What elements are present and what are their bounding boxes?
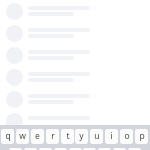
button[interactable] bbox=[0, 89, 150, 111]
button[interactable]: r bbox=[46, 129, 59, 144]
button[interactable]: e bbox=[31, 129, 44, 144]
staticText: i bbox=[110, 130, 113, 142]
button[interactable]: j bbox=[98, 148, 111, 150]
staticText: u bbox=[94, 130, 100, 142]
button[interactable]: t bbox=[61, 129, 74, 144]
button[interactable] bbox=[0, 1, 150, 23]
button[interactable] bbox=[0, 111, 150, 133]
staticText: o bbox=[124, 130, 130, 142]
button[interactable]: f bbox=[54, 148, 67, 150]
staticText: y bbox=[79, 130, 84, 142]
button[interactable]: i bbox=[105, 129, 118, 144]
button[interactable]: h bbox=[83, 148, 96, 150]
button[interactable]: k bbox=[113, 148, 126, 150]
button[interactable]: u bbox=[90, 129, 103, 144]
staticText: r bbox=[51, 130, 55, 142]
button[interactable] bbox=[0, 45, 150, 67]
button[interactable]: y bbox=[75, 129, 88, 144]
button[interactable]: w bbox=[16, 129, 29, 144]
button[interactable]: q bbox=[1, 129, 14, 144]
button[interactable]: o bbox=[120, 129, 133, 144]
staticText: q bbox=[5, 130, 11, 142]
button[interactable] bbox=[0, 23, 150, 45]
button[interactable]: l bbox=[128, 148, 141, 150]
button[interactable]: d bbox=[39, 148, 52, 150]
staticText: w bbox=[19, 130, 26, 142]
staticText: e bbox=[35, 130, 40, 142]
button[interactable]: g bbox=[69, 148, 82, 150]
button[interactable]: a bbox=[9, 148, 22, 150]
button[interactable]: p bbox=[135, 129, 148, 144]
staticText: p bbox=[139, 130, 145, 142]
staticText: t bbox=[66, 130, 70, 142]
button[interactable]: s bbox=[24, 148, 37, 150]
button[interactable] bbox=[0, 67, 150, 89]
